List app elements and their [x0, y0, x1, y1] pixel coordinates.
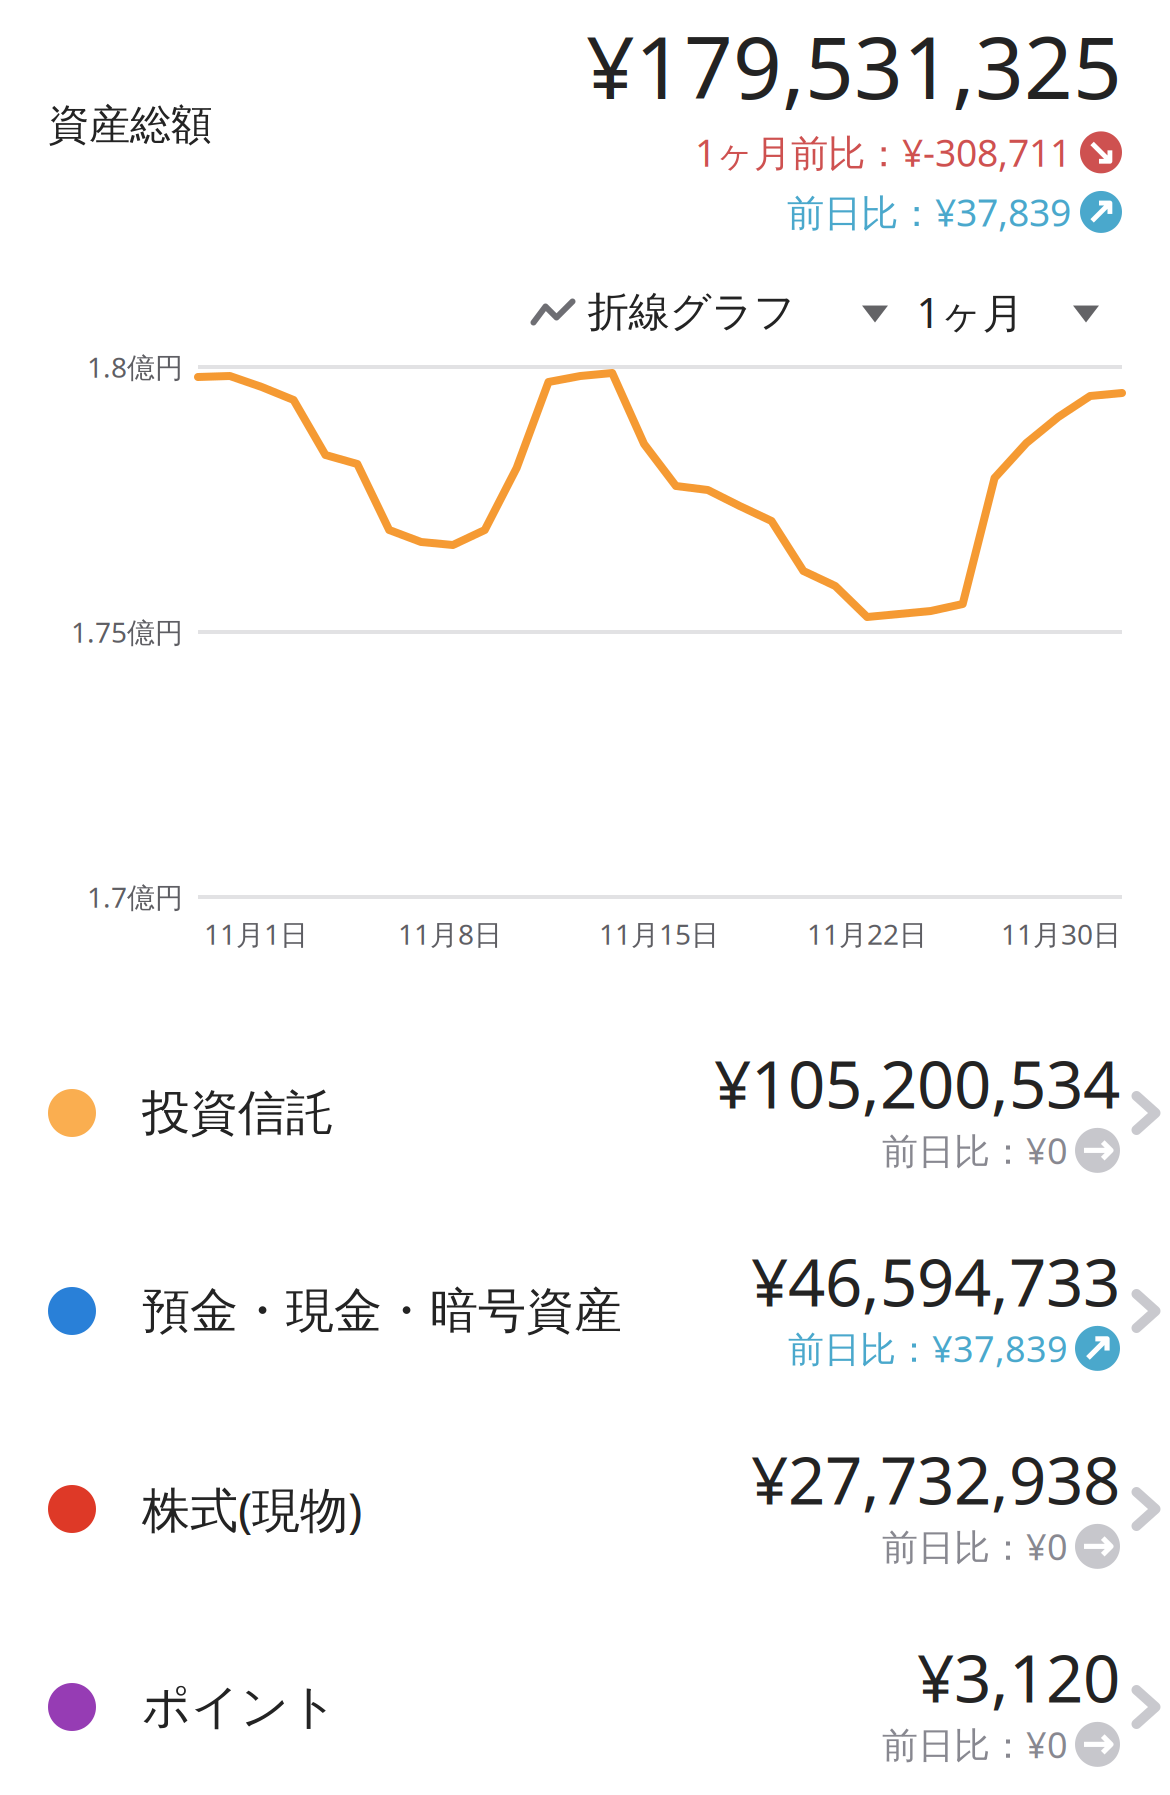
staticText: ¥46,594,733	[751, 1238, 1120, 1324]
staticText: ポイント	[142, 1677, 338, 1736]
staticText: 11月22日	[807, 915, 927, 953]
staticText: 前日比：¥0	[882, 1522, 1068, 1570]
staticText: 11月1日	[204, 915, 308, 953]
button[interactable]: 折線グラフ	[516, 269, 809, 355]
button[interactable]: 投資信託	[0, 1014, 1170, 1212]
staticText: ¥27,732,938	[751, 1436, 1120, 1522]
staticText: ¥105,200,534	[714, 1040, 1120, 1126]
button[interactable]: 株式(現物)	[0, 1410, 1170, 1608]
staticText: 1.75億円	[71, 613, 183, 651]
staticText: 1.7億円	[87, 878, 183, 916]
button[interactable]: グラフ種類を変更	[836, 283, 914, 344]
staticText: 資産総額	[48, 100, 212, 150]
staticText: 株式(現物)	[142, 1477, 362, 1541]
staticText: 前日比：¥0	[882, 1720, 1068, 1768]
button[interactable]: 預金・現金・暗号資産	[0, 1212, 1170, 1410]
staticText: 前日比：¥37,839	[787, 187, 1071, 237]
staticText: 11月8日	[398, 915, 502, 953]
staticText: 前日比：¥37,839	[788, 1324, 1068, 1372]
button[interactable]: 1ヶ月	[902, 267, 1037, 357]
staticText: 預金・現金・暗号資産	[142, 1281, 622, 1340]
staticText: 11月15日	[599, 915, 719, 953]
staticText: ¥179,531,325	[586, 9, 1122, 123]
staticText: ¥3,120	[917, 1634, 1120, 1720]
staticText: 11月30日	[1001, 915, 1121, 953]
staticText: 1.8億円	[87, 348, 183, 386]
button[interactable]: 期間を変更	[1047, 283, 1125, 344]
staticText: 折線グラフ	[587, 287, 795, 337]
staticText: 1ヶ月	[916, 285, 1023, 339]
staticText: 前日比：¥0	[882, 1126, 1068, 1174]
button[interactable]: ポイント	[0, 1608, 1170, 1795]
staticText: 投資信託	[142, 1083, 334, 1142]
staticText: 1ヶ月前比：¥-308,711	[695, 128, 1071, 177]
